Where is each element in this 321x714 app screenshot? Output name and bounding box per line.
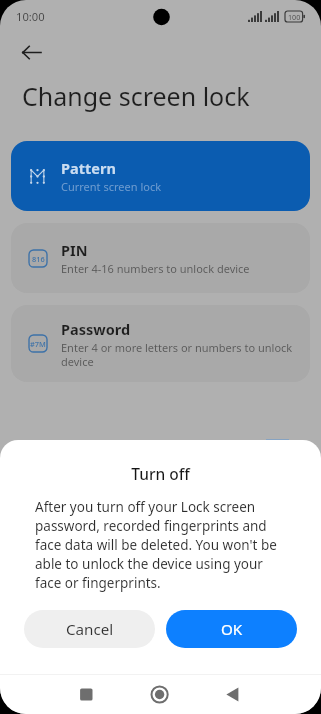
staticText: Enter 4 or more letters or numbers to un… [61,340,302,369]
staticText: Current screen lock [61,179,162,194]
staticText: PIN [61,240,88,260]
button[interactable]: #7M [11,305,310,382]
staticText: Password [61,319,131,339]
button[interactable]: OK [166,610,297,648]
staticText: Pattern [61,158,116,178]
button[interactable]: 816 [11,223,310,293]
staticText: Change screen lock [22,79,250,113]
button[interactable]: Back [15,36,48,69]
staticText: Turn off [0,463,321,484]
staticText: OK [221,619,243,640]
staticText: 100 [288,12,301,22]
staticText: Cancel [66,619,114,640]
button[interactable]: Pattern [11,141,310,211]
staticText: Enter 4-16 numbers to unlock device [61,261,250,276]
button[interactable]: Cancel [24,610,155,648]
staticText: #7M [30,339,46,349]
staticText: After you turn off your Lock screen pass… [35,498,286,592]
staticText: 816 [32,254,45,264]
staticText: 10:00 [16,9,45,24]
